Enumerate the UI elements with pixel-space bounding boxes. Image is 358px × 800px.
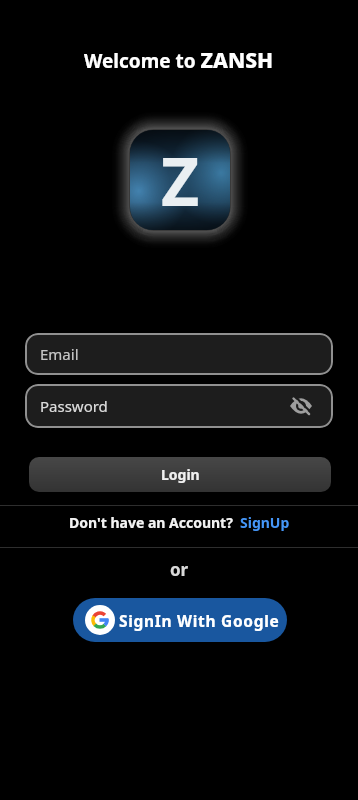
button[interactable]: SignIn With Google xyxy=(73,598,287,642)
staticText: Login xyxy=(161,465,200,484)
button[interactable]: Login xyxy=(29,457,331,492)
staticText: Password xyxy=(40,396,108,416)
staticText: or xyxy=(170,558,189,580)
button[interactable]: SignUp xyxy=(240,513,290,532)
button[interactable]: Password xyxy=(25,384,333,428)
staticText: Z xyxy=(161,135,200,225)
button[interactable]: Email xyxy=(25,333,333,375)
staticText: Email xyxy=(40,344,79,364)
button[interactable] xyxy=(289,394,313,418)
staticText: Don't have an Account? xyxy=(69,513,233,532)
staticText: Welcome to ZANSH xyxy=(84,46,274,75)
staticText: SignIn With Google xyxy=(119,610,280,631)
